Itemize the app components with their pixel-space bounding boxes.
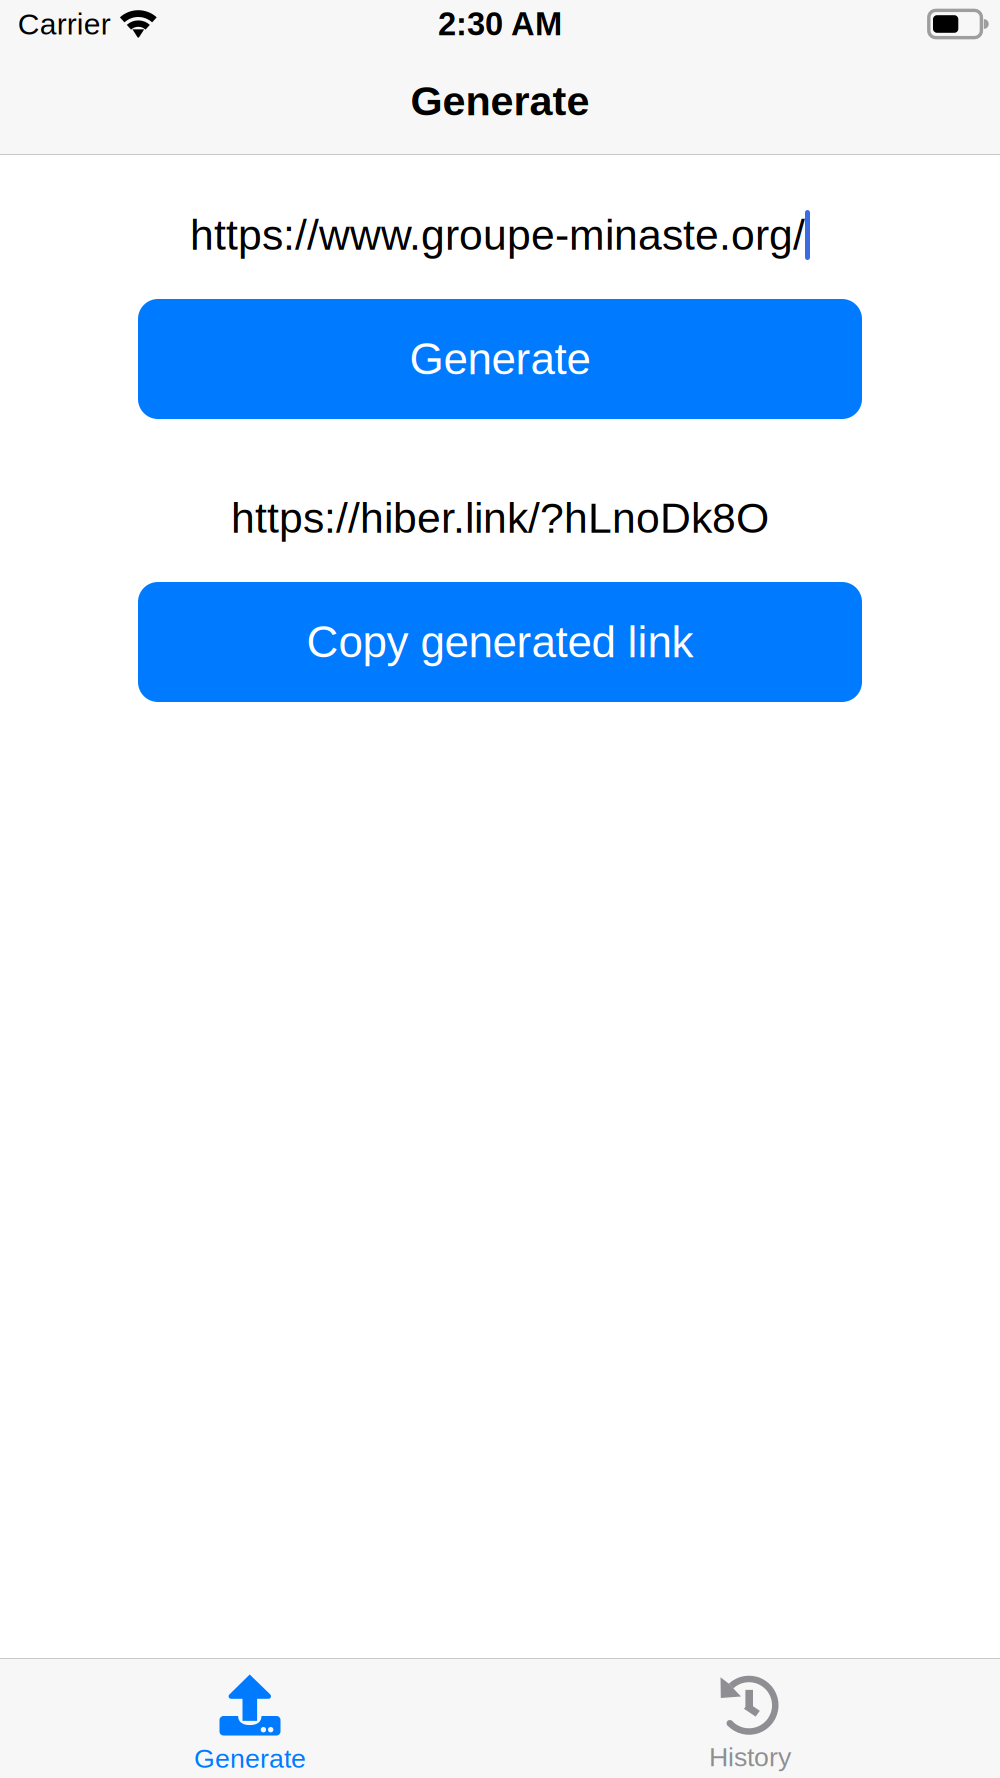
button[interactable]: Generate: [0, 1659, 500, 1778]
staticText: Generate: [194, 1743, 306, 1773]
button[interactable]: Generate: [138, 299, 862, 419]
staticText: 2:30 AM: [438, 6, 562, 42]
button[interactable]: History: [500, 1659, 1000, 1778]
staticText: Generate: [409, 334, 590, 384]
button[interactable]: Copy generated link: [138, 582, 862, 702]
staticText: Generate: [410, 78, 589, 124]
staticText: History: [709, 1742, 791, 1772]
staticText: Copy generated link: [306, 617, 693, 667]
staticText: https://hiber.link/?hLnoDk8O: [231, 494, 769, 542]
staticText: https://www.groupe-minaste.org/: [190, 211, 805, 259]
staticText: Carrier: [18, 7, 111, 41]
